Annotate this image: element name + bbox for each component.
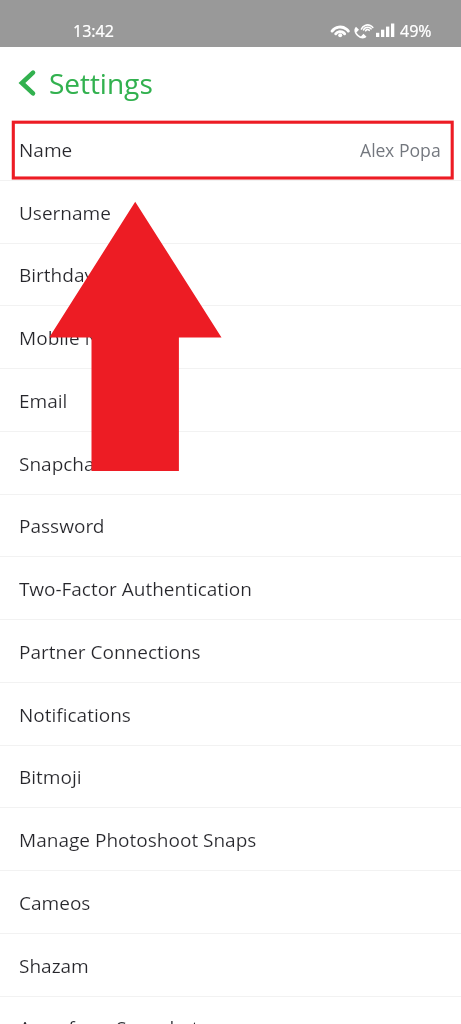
button[interactable]: Partner Connections [0, 620, 461, 683]
button[interactable]: Two-Factor Authentication [0, 557, 461, 620]
staticText: Bitmoji [19, 764, 82, 790]
staticText: Partner Connections [19, 639, 201, 665]
button[interactable]: Shazam [0, 934, 461, 997]
button[interactable]: Cameos [0, 871, 461, 934]
staticText: Birthday [19, 262, 95, 288]
staticText: 13:42 [73, 20, 114, 42]
staticText: Notifications [19, 702, 131, 728]
staticText: Username [19, 200, 111, 226]
staticText: Cameos [19, 890, 91, 916]
staticText: Password [19, 513, 105, 539]
button[interactable]: Back [7, 63, 47, 103]
staticText: Alex Popa [360, 138, 441, 162]
button[interactable]: Apps from Snapchat [0, 997, 461, 1024]
staticText: Settings [49, 64, 153, 102]
staticText: Shazam [19, 953, 89, 979]
staticText: Mobile Number [19, 325, 159, 351]
button[interactable]: Snapchat [0, 432, 461, 495]
staticText: Manage Photoshoot Snaps [19, 827, 257, 853]
button[interactable]: Bitmoji [0, 746, 461, 808]
button[interactable]: Email [0, 369, 461, 432]
button[interactable]: Birthday [0, 244, 461, 306]
staticText: Apps from Snapchat [19, 1015, 199, 1024]
staticText: 49% [400, 20, 432, 42]
button[interactable]: Password [0, 495, 461, 557]
staticText: Name [19, 137, 73, 163]
staticText: Snapchat [19, 451, 102, 477]
button[interactable]: Notifications [0, 683, 461, 746]
button[interactable]: Username [0, 181, 461, 244]
button[interactable]: Manage Photoshoot Snaps [0, 808, 461, 871]
button[interactable]: Mobile Number [0, 306, 461, 369]
staticText: Two-Factor Authentication [19, 576, 252, 602]
staticText: Email [19, 388, 68, 414]
button[interactable]: Name [0, 118, 461, 181]
